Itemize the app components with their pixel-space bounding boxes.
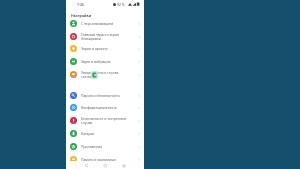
button[interactable]: Recent apps [120, 162, 127, 169]
staticText: Память и хранилище [81, 157, 135, 162]
staticText: Уведомления и строка состояния [81, 70, 135, 79]
button[interactable]: Home [102, 162, 109, 169]
staticText: Безопасность и экстренные случаи [81, 116, 135, 125]
button[interactable]: Пароли и безопасность [66, 89, 144, 102]
staticText: 92 % [117, 2, 125, 6]
button[interactable]: Экран и яркость [66, 42, 144, 55]
button[interactable]: Back [83, 162, 90, 169]
button[interactable]: Память и хранилище [66, 153, 144, 166]
staticText: Пароли и безопасность [81, 93, 135, 98]
staticText: С персонализацией [81, 21, 135, 26]
staticText: Приложения [81, 144, 135, 149]
staticText: Экран и яркость [81, 46, 135, 51]
button[interactable]: Приложения [66, 140, 144, 153]
button[interactable]: Главный экран и экран блокировки [66, 30, 144, 43]
staticText: Конфиденциальность [81, 105, 135, 110]
button[interactable]: С персонализацией [66, 17, 144, 30]
staticText: Главный экран и экран блокировки [81, 32, 135, 41]
button[interactable]: Звуки и вибрация [66, 55, 144, 68]
button[interactable]: Батарея [66, 127, 144, 140]
staticText: 7:46 [77, 2, 85, 7]
staticText: Батарея [81, 131, 135, 136]
button[interactable]: Конфиденциальность [66, 101, 144, 114]
staticText: Настройки [71, 13, 92, 18]
staticText: Звуки и вибрация [81, 59, 135, 64]
button[interactable]: Безопасность и экстренные случаи [66, 114, 144, 127]
button[interactable]: Уведомления и строка состояния [66, 68, 144, 81]
